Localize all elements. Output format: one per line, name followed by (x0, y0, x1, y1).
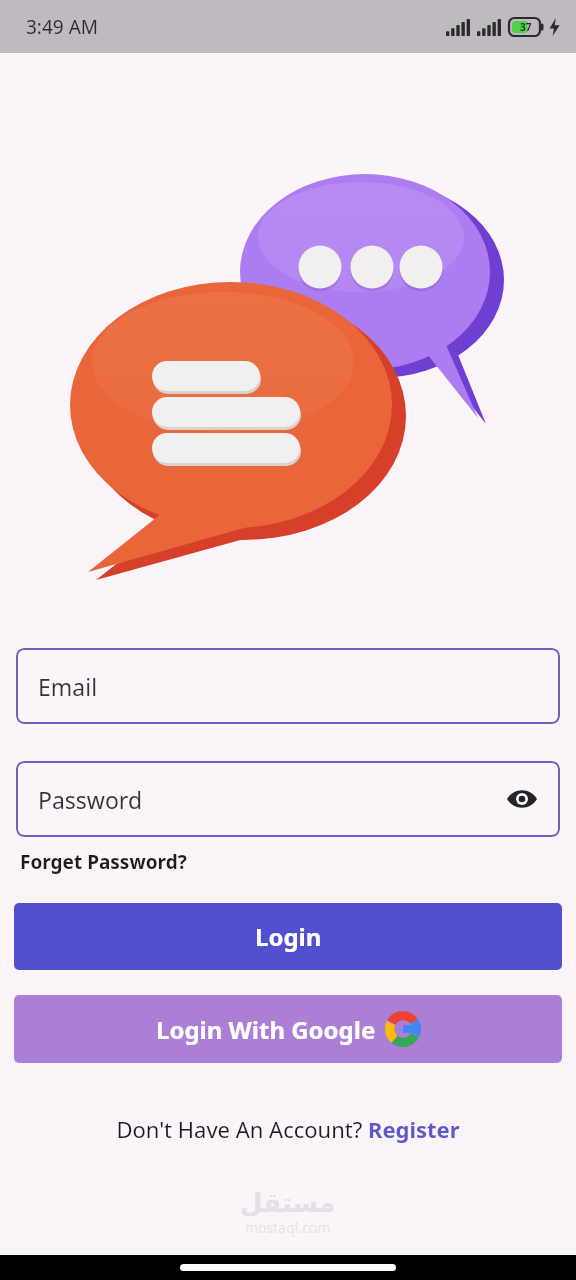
staticText: mostaql.com (245, 1218, 331, 1237)
staticText: 37 (520, 20, 532, 34)
staticText: Don't Have An Account? Register (116, 1114, 460, 1144)
staticText: Login With Google (156, 1013, 376, 1046)
button[interactable]: Password (16, 761, 560, 837)
button[interactable]: Forget Password? (20, 845, 187, 879)
button[interactable]: Don't Have An Account? Register (108, 1110, 468, 1148)
button[interactable]: Email (16, 648, 560, 724)
staticText: Email (38, 671, 98, 702)
button[interactable]: Login With Google (14, 995, 562, 1063)
staticText: Forget Password? (20, 849, 187, 875)
button[interactable]: Login (14, 903, 562, 970)
staticText: 3:49 AM (26, 14, 99, 40)
button[interactable]: Show password (502, 779, 542, 819)
staticText: Password (38, 784, 143, 815)
staticText: Login (255, 920, 322, 953)
other: Google (385, 1011, 421, 1047)
staticText: مستقل (240, 1188, 336, 1218)
